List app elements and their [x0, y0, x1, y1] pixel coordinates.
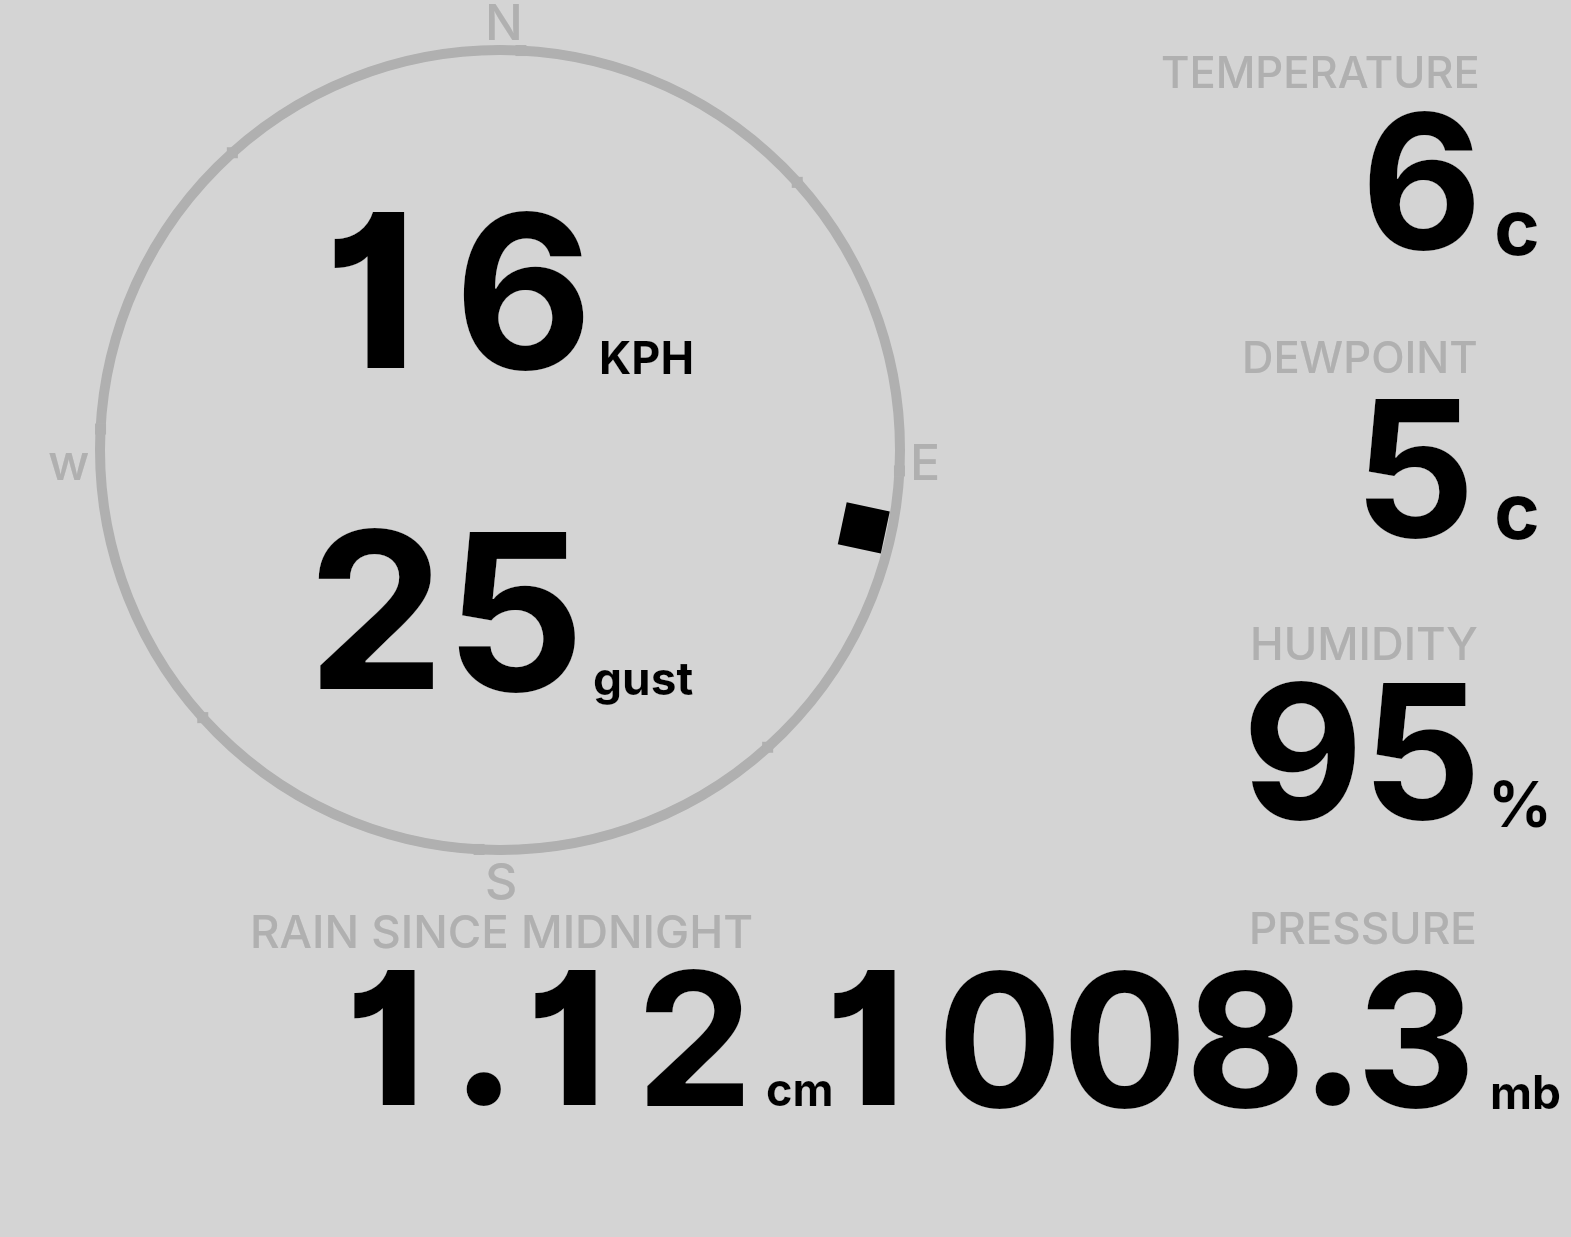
staticText: 2: [307, 477, 445, 742]
staticText: 6: [454, 162, 593, 421]
staticText: S: [485, 851, 518, 911]
staticText: 6: [1361, 68, 1483, 294]
staticText: 1: [825, 925, 906, 1150]
staticText: mb: [1490, 1064, 1561, 1120]
staticText: .: [1300, 924, 1366, 1149]
staticText: w: [48, 432, 90, 492]
staticText: 1: [345, 925, 426, 1150]
staticText: .: [451, 924, 517, 1149]
staticText: 8: [1185, 927, 1307, 1152]
button[interactable]: Temperature 6 degrees C: [1150, 45, 1560, 270]
staticText: HUMIDITY: [1250, 616, 1478, 671]
button[interactable]: Humidity 95 percent: [1150, 615, 1560, 840]
staticText: c: [1494, 463, 1540, 557]
staticText: TEMPERATURE: [1161, 46, 1480, 99]
staticText: 5: [1354, 353, 1476, 583]
staticText: %: [1488, 766, 1552, 842]
staticText: 3: [1356, 927, 1477, 1152]
staticText: 1: [324, 161, 417, 420]
staticText: 5: [445, 479, 585, 744]
button[interactable]: Wind 16 KPH, gusting 25, east south east: [95, 45, 905, 855]
button[interactable]: Dewpoint 5 degrees C: [1150, 330, 1560, 555]
staticText: gust: [593, 650, 694, 706]
staticText: 1: [526, 925, 607, 1150]
staticText: E: [910, 432, 941, 492]
staticText: 2: [636, 926, 754, 1151]
staticText: KPH: [599, 330, 695, 384]
staticText: DEWPOINT: [1242, 331, 1478, 384]
staticText: 9: [1242, 638, 1364, 864]
staticText: 5: [1362, 638, 1482, 864]
staticText: 0: [1062, 927, 1188, 1152]
staticText: cm: [766, 1062, 834, 1116]
staticText: PRESSURE: [1249, 901, 1477, 954]
staticText: RAIN SINCE MIDNIGHT: [250, 904, 754, 959]
button[interactable]: Pressure 1008.3 mb: [850, 900, 1565, 1125]
staticText: c: [1494, 179, 1540, 273]
staticText: N: [485, 0, 523, 52]
staticText: 0: [937, 927, 1063, 1152]
button[interactable]: Rain since midnight 1.12 cm: [245, 900, 845, 1125]
